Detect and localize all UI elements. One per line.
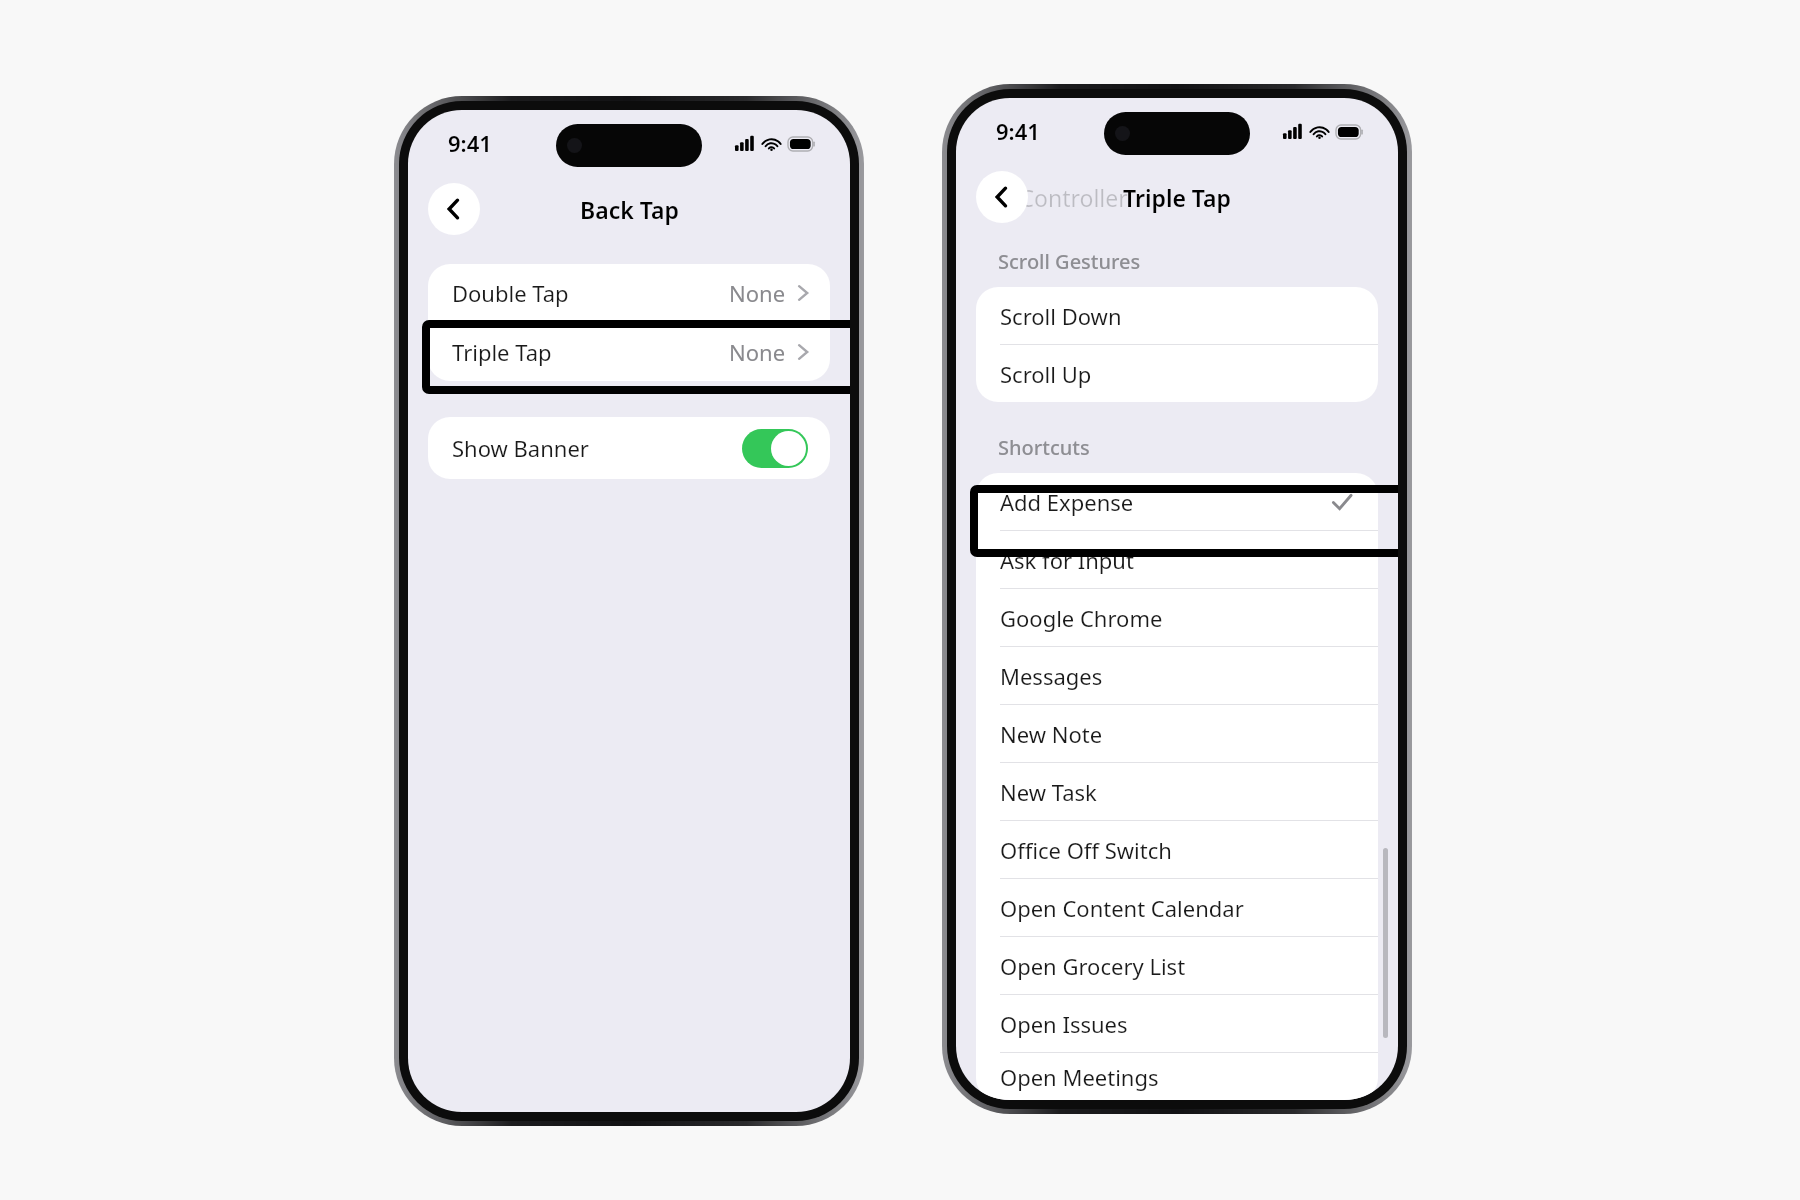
- button[interactable]: Google Chrome: [976, 589, 1378, 646]
- button[interactable]: Scroll Down: [976, 287, 1378, 344]
- staticText: New Task: [1000, 777, 1097, 807]
- staticText: Open Content Calendar: [1000, 893, 1244, 923]
- staticText: Open Issues: [1000, 1009, 1128, 1039]
- staticText: Scroll Down: [1000, 301, 1122, 331]
- staticText: None: [729, 278, 786, 308]
- staticText: Double Tap: [452, 278, 569, 308]
- button[interactable]: Show Banner: [428, 417, 830, 479]
- staticText: Open Meetings: [1000, 1062, 1159, 1092]
- button[interactable]: New Note: [976, 705, 1378, 762]
- button[interactable]: Office Off Switch: [976, 821, 1378, 878]
- staticText: 9:41: [448, 128, 492, 158]
- button[interactable]: Open Meetings: [976, 1053, 1378, 1100]
- button[interactable]: Open Content Calendar: [976, 879, 1378, 936]
- button[interactable]: New Task: [976, 763, 1378, 820]
- button[interactable]: Open Grocery List: [976, 937, 1378, 994]
- button[interactable]: Messages: [976, 647, 1378, 704]
- staticText: Ask for Input: [1000, 545, 1134, 575]
- button[interactable]: Ask for Input: [976, 531, 1378, 588]
- button[interactable]: Back: [976, 171, 1028, 223]
- staticText: Messages: [1000, 661, 1103, 691]
- staticText: m Controller: [992, 182, 1128, 213]
- staticText: Triple Tap: [452, 337, 552, 367]
- button[interactable]: Add Expense: [976, 473, 1378, 530]
- staticText: Back Tap: [580, 194, 679, 225]
- staticText: Open Grocery List: [1000, 951, 1186, 981]
- button[interactable]: Open Issues: [976, 995, 1378, 1052]
- button[interactable]: Double Tap: [428, 264, 830, 322]
- staticText: Shortcuts: [998, 434, 1090, 461]
- staticText: Add Expense: [1000, 487, 1134, 517]
- button[interactable]: Show Banner toggle: [742, 429, 808, 468]
- staticText: None: [729, 337, 786, 367]
- staticText: Office Off Switch: [1000, 835, 1172, 865]
- staticText: 9:41: [996, 116, 1040, 146]
- staticText: Google Chrome: [1000, 603, 1163, 633]
- staticText: Triple Tap: [1123, 182, 1231, 213]
- staticText: New Note: [1000, 719, 1103, 749]
- button[interactable]: Back: [428, 183, 480, 235]
- button[interactable]: Scroll Up: [976, 345, 1378, 402]
- button[interactable]: Triple Tap: [428, 323, 830, 381]
- staticText: Show Banner: [452, 433, 589, 463]
- staticText: Scroll Up: [1000, 359, 1092, 389]
- staticText: Scroll Gestures: [998, 248, 1141, 275]
